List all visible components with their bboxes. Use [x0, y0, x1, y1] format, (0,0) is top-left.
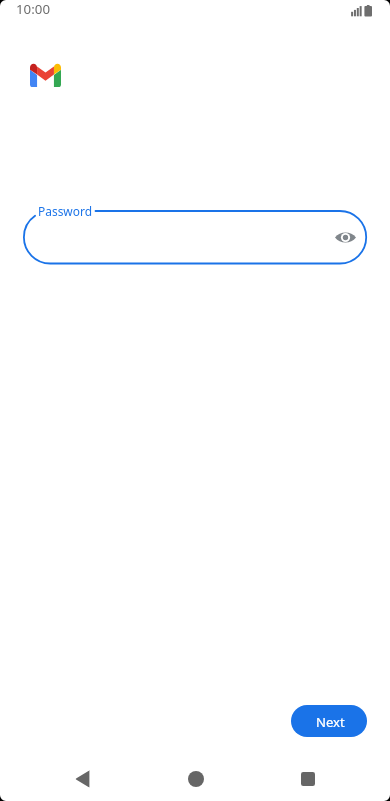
button[interactable]: Show password — [331, 223, 359, 251]
staticText: Next — [316, 713, 345, 731]
button[interactable]: Back — [51, 757, 115, 801]
staticText: 10:00 — [16, 0, 50, 18]
button[interactable]: Recent apps — [276, 757, 340, 801]
button[interactable]: Home — [164, 757, 228, 801]
staticText: Password — [38, 203, 92, 219]
button[interactable]: Next — [291, 705, 367, 737]
